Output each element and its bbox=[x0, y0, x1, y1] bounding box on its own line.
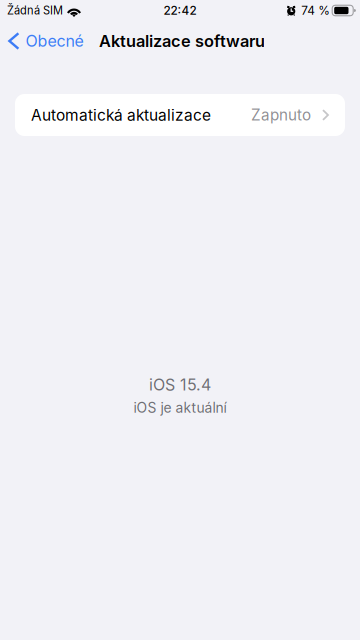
staticText: Automatická aktualizace bbox=[31, 106, 211, 124]
button[interactable]: Obecné bbox=[0, 26, 90, 56]
staticText: iOS 15.4 bbox=[149, 375, 211, 394]
staticText: iOS je aktuální bbox=[133, 399, 226, 416]
staticText: Obecné bbox=[26, 31, 84, 51]
staticText: 22:42 bbox=[163, 3, 196, 18]
staticText: 74 % bbox=[301, 3, 330, 18]
staticText: Aktualizace softwaru bbox=[99, 31, 265, 51]
button[interactable]: Automatická aktualizace bbox=[15, 94, 345, 136]
staticText: Žádná SIM bbox=[7, 4, 63, 17]
staticText: Zapnuto bbox=[251, 106, 311, 124]
